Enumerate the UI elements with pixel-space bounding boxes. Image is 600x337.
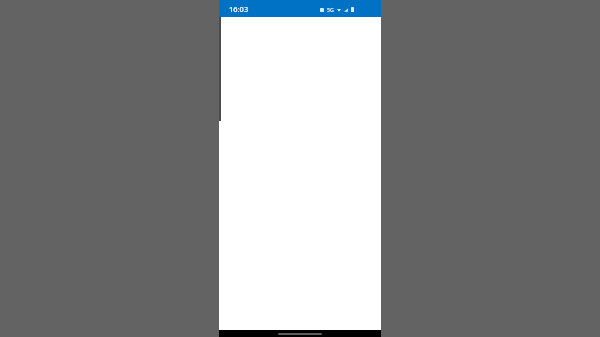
button[interactable]: Home gesture handle — [278, 333, 322, 335]
button[interactable]: 16:03 — [229, 4, 249, 14]
button[interactable]: System status icons — [320, 6, 354, 13]
staticText: 5G — [327, 6, 334, 13]
